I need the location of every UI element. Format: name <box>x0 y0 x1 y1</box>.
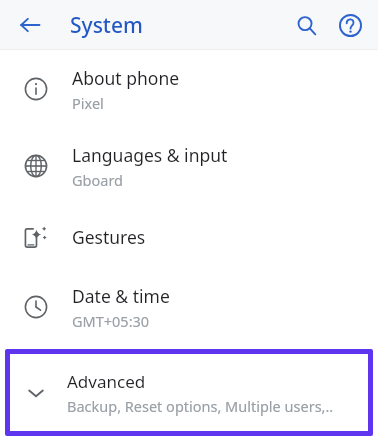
staticText: Date & time <box>72 284 170 308</box>
button[interactable]: Back <box>8 3 52 47</box>
staticText: Advanced <box>67 370 146 393</box>
button[interactable]: About phone <box>0 50 378 128</box>
staticText: Gestures <box>72 225 146 249</box>
button[interactable]: Gestures <box>0 204 378 270</box>
staticText: Backup, Reset options, Multiple users,.. <box>67 396 334 416</box>
staticText: Pixel <box>72 93 104 113</box>
button[interactable]: Advanced <box>5 349 373 436</box>
button[interactable]: Search <box>284 3 328 47</box>
staticText: Languages & input <box>72 143 228 167</box>
staticText: GMT+05:30 <box>72 311 150 331</box>
staticText: About phone <box>72 66 180 90</box>
button[interactable]: Help <box>328 3 372 47</box>
staticText: System <box>70 11 143 40</box>
button[interactable]: Languages & input <box>0 128 378 204</box>
staticText: Gboard <box>72 170 123 190</box>
button[interactable]: Date & time <box>0 270 378 344</box>
